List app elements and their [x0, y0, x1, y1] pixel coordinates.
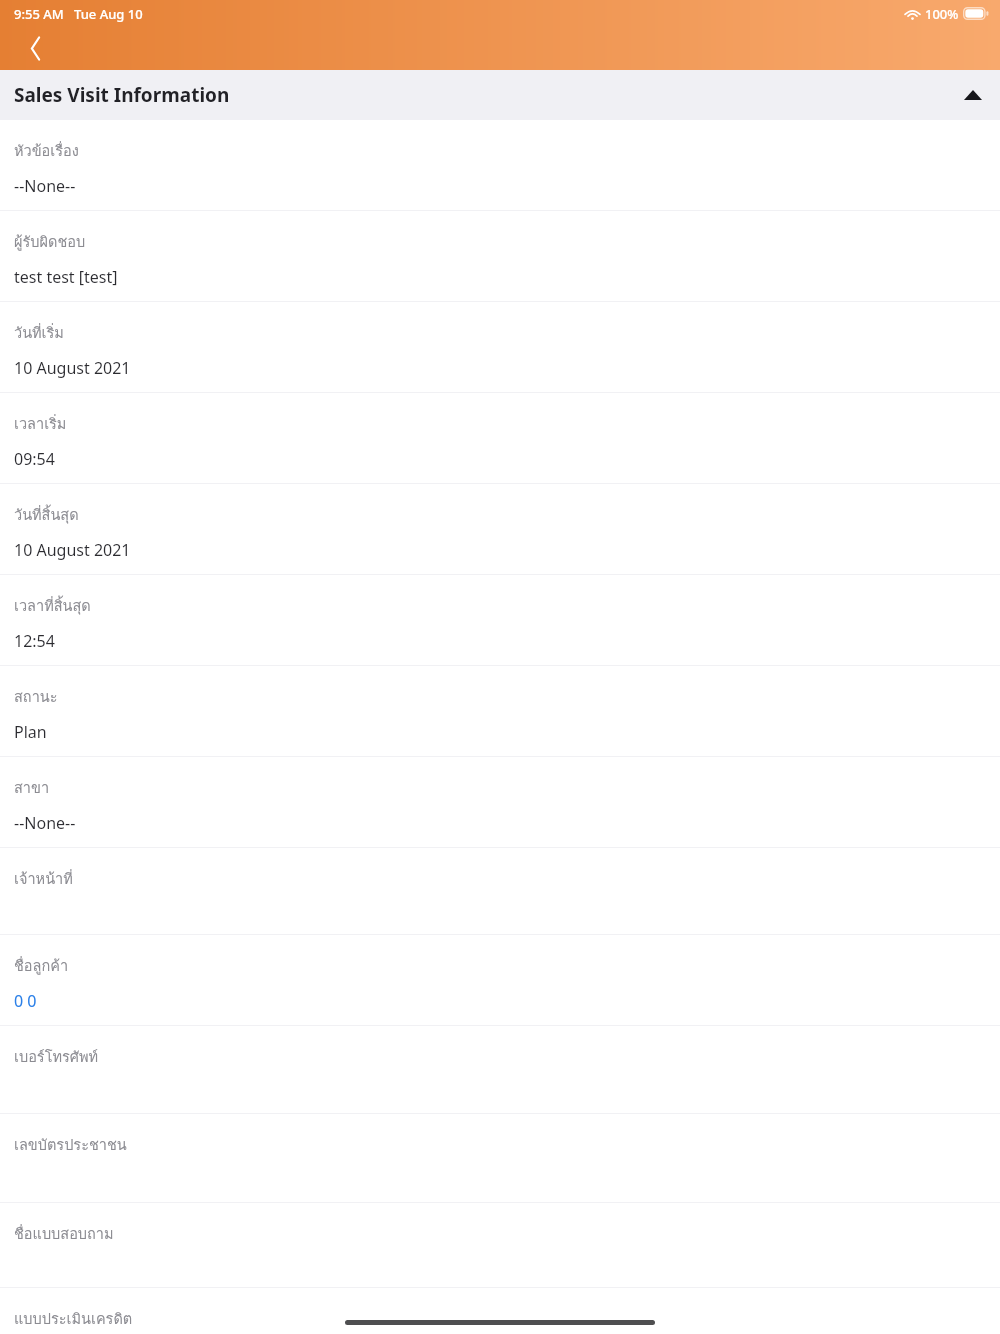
staticText: --None--	[14, 812, 76, 834]
button[interactable]: ชื่อลูกค้า	[0, 935, 1000, 1025]
staticText: 100%	[925, 5, 959, 23]
staticText: เลขบัตรประชาชน	[14, 1133, 127, 1156]
staticText: สาขา	[14, 776, 50, 799]
staticText: แบบประเมินเครดิต	[14, 1307, 133, 1330]
staticText: --None--	[14, 175, 76, 197]
button[interactable]: หัวข้อเรื่อง	[0, 120, 1000, 210]
staticText: วันที่สิ้นสุด	[14, 503, 79, 526]
button[interactable]: เลขบัตรประชาชน	[0, 1114, 1000, 1202]
staticText: 9:55 AM	[14, 5, 64, 23]
button[interactable]: สถานะ	[0, 666, 1000, 756]
staticText: 09:54	[14, 448, 55, 470]
button[interactable]: Back	[8, 27, 62, 69]
staticText: เวลาที่สิ้นสุด	[14, 594, 91, 617]
button[interactable]: สาขา	[0, 757, 1000, 847]
button[interactable]: เจ้าหน้าที่	[0, 848, 1000, 934]
staticText: Sales Visit Information	[14, 82, 230, 108]
button[interactable]: ชื่อแบบสอบถาม	[0, 1203, 1000, 1287]
staticText: ชื่อแบบสอบถาม	[14, 1222, 114, 1245]
staticText: Tue Aug 10	[74, 5, 143, 23]
button[interactable]: เวลาเริ่ม	[0, 393, 1000, 483]
staticText: ชื่อลูกค้า	[14, 954, 69, 977]
button[interactable]: เวลาที่สิ้นสุด	[0, 575, 1000, 665]
staticText: วันที่เริ่ม	[14, 321, 64, 344]
button[interactable]: วันที่เริ่ม	[0, 302, 1000, 392]
button[interactable]: เบอร์โทรศัพท์	[0, 1026, 1000, 1113]
staticText: เจ้าหน้าที่	[14, 867, 73, 890]
staticText: 10 August 2021	[14, 357, 131, 379]
staticText: 12:54	[14, 630, 55, 652]
staticText: Plan	[14, 721, 47, 743]
button[interactable]: ผู้รับผิดชอบ	[0, 211, 1000, 301]
button[interactable]: Sales Visit Information	[0, 70, 1000, 120]
button[interactable]: วันที่สิ้นสุด	[0, 484, 1000, 574]
button[interactable]: แบบประเมินเครดิต	[0, 1288, 1000, 1334]
staticText: หัวข้อเรื่อง	[14, 139, 79, 162]
staticText: ผู้รับผิดชอบ	[14, 230, 86, 253]
staticText: 10 August 2021	[14, 539, 131, 561]
button[interactable]: Collapse section	[956, 78, 990, 112]
staticText: เบอร์โทรศัพท์	[14, 1045, 99, 1068]
staticText: test test [test]	[14, 266, 118, 288]
staticText: เวลาเริ่ม	[14, 412, 67, 435]
staticText: 0 0	[14, 990, 37, 1012]
staticText: สถานะ	[14, 685, 58, 708]
